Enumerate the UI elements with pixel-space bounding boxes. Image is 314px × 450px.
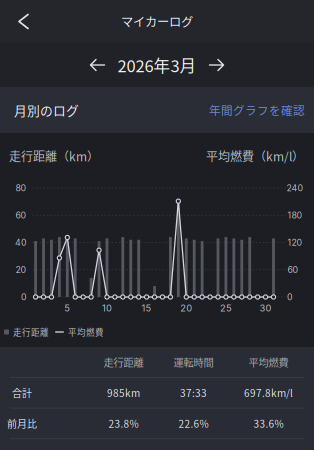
staticText: 60 <box>15 210 26 220</box>
staticText: 走行距離 <box>13 326 49 338</box>
staticText: 前月比 <box>7 416 37 431</box>
button[interactable]: 戻る <box>0 4 42 38</box>
staticText: 180 <box>287 210 302 220</box>
staticText: 37:33 <box>180 385 207 400</box>
staticText: 走行距離（km） <box>9 147 99 165</box>
button[interactable]: 年間グラフを確認 <box>209 94 314 126</box>
staticText: 0 <box>21 292 27 302</box>
staticText: 合計 <box>12 385 32 400</box>
staticText: 0 <box>287 292 293 302</box>
staticText: 20 <box>180 302 192 314</box>
staticText: 運転時間 <box>173 355 213 369</box>
staticText: 15 <box>142 302 152 314</box>
staticText: 平均燃費（km/l） <box>206 147 304 165</box>
staticText: 25 <box>220 302 232 314</box>
button[interactable]: 次の月 <box>202 50 230 79</box>
staticText: 22.6% <box>178 416 208 431</box>
staticText: 120 <box>287 237 302 248</box>
staticText: 60 <box>287 264 298 275</box>
staticText: 697.8km/l <box>244 385 293 400</box>
staticText: 平均燃費 <box>248 355 288 369</box>
staticText: 985km <box>107 385 140 400</box>
staticText: 5 <box>64 302 70 314</box>
staticText: 10 <box>102 302 112 314</box>
staticText: 走行距離 <box>103 355 143 369</box>
staticText: 平均燃費 <box>68 326 104 338</box>
staticText: マイカーログ <box>121 13 193 30</box>
staticText: 240 <box>286 183 303 193</box>
staticText: 23.8% <box>108 416 138 431</box>
staticText: 30 <box>260 302 272 314</box>
staticText: 80 <box>15 183 26 193</box>
staticText: 40 <box>15 237 27 248</box>
button[interactable]: 前の月 <box>83 50 111 79</box>
staticText: 2026年3月 <box>117 53 196 77</box>
staticText: 20 <box>15 264 26 275</box>
staticText: 33.6% <box>253 416 283 431</box>
staticText: 月別のログ <box>14 101 79 119</box>
staticText: 年間グラフを確認 <box>209 102 305 118</box>
